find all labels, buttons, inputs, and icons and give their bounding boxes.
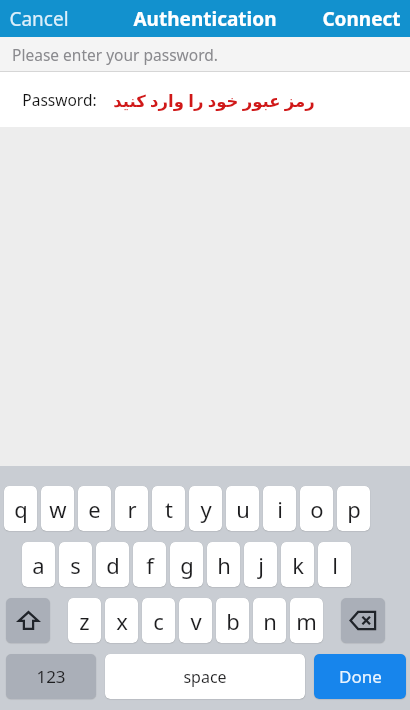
staticText: c [153, 606, 164, 636]
staticText: space [183, 666, 227, 688]
staticText: d [106, 550, 120, 580]
staticText: رمز عبور خود را وارد کنید [113, 89, 315, 111]
button[interactable]: x [105, 598, 138, 643]
button[interactable]: r [115, 486, 148, 531]
button[interactable]: n [253, 598, 286, 643]
staticText: j [258, 550, 264, 580]
staticText: e [88, 494, 101, 524]
button[interactable]: t [152, 486, 185, 531]
button[interactable]: d [96, 542, 129, 587]
staticText: k [292, 550, 304, 580]
button[interactable]: q [4, 486, 37, 531]
button[interactable]: Connect [313, 1, 410, 37]
staticText: y [200, 494, 212, 524]
button[interactable]: 123 [6, 654, 96, 699]
button[interactable]: m [290, 598, 323, 643]
staticText: Done [339, 665, 382, 688]
staticText: q [14, 494, 28, 524]
staticText: u [236, 494, 250, 524]
button[interactable]: i [263, 486, 296, 531]
button[interactable]: z [68, 598, 101, 643]
button[interactable]: y [189, 486, 222, 531]
staticText: f [146, 550, 154, 580]
staticText: v [190, 606, 202, 636]
button[interactable]: h [207, 542, 240, 587]
button[interactable]: a [22, 542, 55, 587]
button[interactable]: u [226, 486, 259, 531]
staticText: p [347, 494, 361, 524]
button[interactable]: s [59, 542, 92, 587]
staticText: w [49, 494, 67, 524]
button[interactable]: Cancel [0, 1, 78, 37]
staticText: Connect [322, 6, 401, 32]
staticText: r [127, 494, 137, 524]
button[interactable]: e [78, 486, 111, 531]
button[interactable]: Done [314, 654, 406, 699]
button[interactable]: j [244, 542, 277, 587]
staticText: h [217, 550, 231, 580]
button[interactable]: f [133, 542, 166, 587]
staticText: l [332, 550, 338, 580]
button[interactable]: w [41, 486, 74, 531]
button[interactable]: Shift [6, 598, 50, 643]
staticText: i [277, 494, 283, 524]
button[interactable]: k [281, 542, 314, 587]
staticText: t [165, 494, 173, 524]
button[interactable]: c [142, 598, 175, 643]
staticText: 123 [36, 665, 66, 688]
staticText: Authentication [133, 6, 277, 32]
button[interactable]: b [216, 598, 249, 643]
button[interactable]: space [105, 654, 305, 699]
staticText: Please enter your password. [12, 44, 218, 65]
button[interactable]: Backspace [341, 598, 385, 643]
staticText: o [310, 494, 324, 524]
staticText: z [79, 606, 90, 636]
button[interactable]: g [170, 542, 203, 587]
button[interactable]: l [318, 542, 351, 587]
staticText: s [70, 550, 81, 580]
staticText: x [116, 606, 128, 636]
staticText: Password: [22, 89, 97, 110]
staticText: n [263, 606, 277, 636]
staticText: Cancel [9, 6, 69, 32]
staticText: a [32, 550, 45, 580]
button[interactable]: o [300, 486, 333, 531]
button[interactable]: v [179, 598, 212, 643]
staticText: m [296, 606, 317, 636]
staticText: g [180, 550, 194, 580]
button[interactable]: p [337, 486, 370, 531]
staticText: b [226, 606, 240, 636]
